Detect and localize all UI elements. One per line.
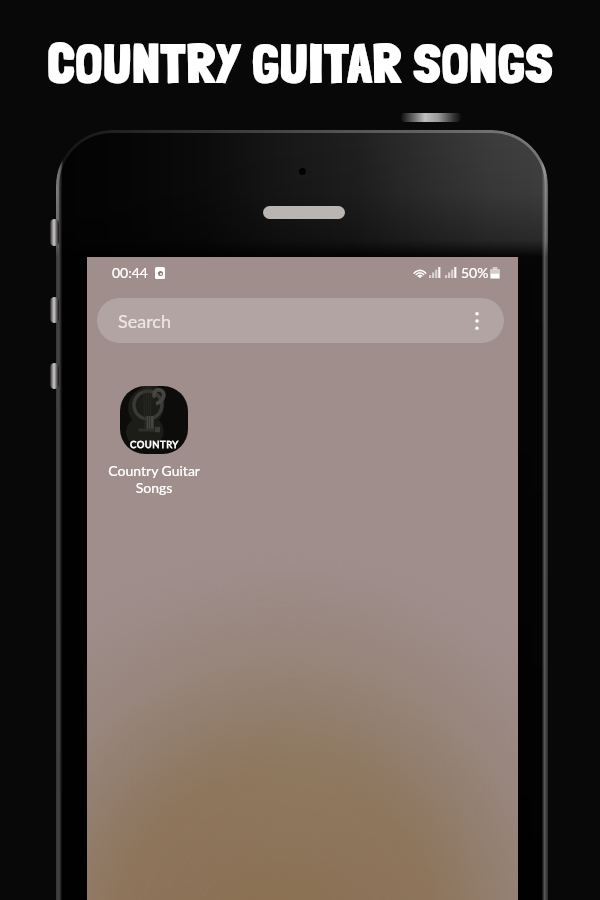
staticText: Search	[118, 310, 171, 332]
button[interactable]: COUNTRY	[108, 386, 200, 496]
button[interactable]: More options	[468, 308, 486, 334]
button[interactable]: Search	[97, 298, 504, 343]
staticText: 00:44	[112, 264, 148, 281]
staticText: 50%	[461, 264, 489, 281]
staticText: Country Guitar Songs	[108, 462, 200, 496]
staticText: COUNTRY GUITAR SONGS	[47, 31, 554, 96]
staticText: COUNTRY	[130, 439, 179, 450]
